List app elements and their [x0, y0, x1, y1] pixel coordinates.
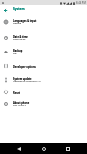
button[interactable]: Reset: [0, 86, 87, 98]
staticText: 8:44 PM: [76, 1, 86, 5]
staticText: Off: [13, 52, 17, 55]
staticText: System: [13, 7, 25, 11]
staticText: Off: [13, 52, 17, 55]
staticText: Updated to Android 8.1.0: [13, 80, 41, 83]
button[interactable]: Back: [13, 143, 25, 154]
button[interactable]: Recents: [62, 143, 74, 154]
staticText: Date & time: [13, 35, 28, 38]
staticText: Reset: [13, 91, 20, 94]
button[interactable]: Languages & input: [0, 14, 87, 30]
staticText: Developer options: [13, 65, 36, 68]
button[interactable]: Backup: [0, 44, 87, 59]
staticText: Reset: [13, 91, 20, 94]
staticText: About phone: [13, 101, 30, 104]
staticText: Date & time: [13, 35, 28, 38]
button[interactable]: Date & time: [0, 30, 87, 46]
button[interactable]: Home: [38, 143, 50, 154]
staticText: GMT+05:30: [13, 38, 26, 41]
staticText: Updated to Android 8.1.0: [13, 80, 41, 83]
staticText: System: [13, 7, 25, 11]
staticText: System update: [13, 77, 32, 80]
staticText: GM 1 Plus 4: [13, 104, 26, 107]
button[interactable]: Developer options: [0, 59, 87, 73]
staticText: Developer options: [13, 65, 36, 68]
staticText: About phone: [13, 101, 30, 104]
staticText: Backup: [13, 49, 23, 52]
staticText: Gboard: [13, 22, 22, 25]
staticText: GM 1 Plus 4: [13, 104, 26, 107]
staticText: Backup: [13, 49, 23, 52]
button[interactable]: Back: [1, 6, 10, 15]
staticText: Languages & input: [13, 19, 37, 22]
staticText: GMT+05:30: [13, 38, 26, 41]
button[interactable]: System update: [0, 73, 87, 87]
staticText: Gboard: [13, 22, 22, 25]
staticText: Languages & input: [13, 19, 37, 22]
staticText: System update: [13, 77, 32, 80]
button[interactable]: About phone: [0, 97, 87, 111]
